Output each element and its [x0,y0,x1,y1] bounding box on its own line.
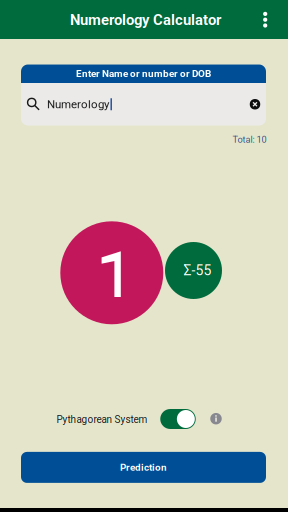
staticText: Total: 10 [232,134,266,145]
staticText: Numerology Calculator [70,11,221,29]
staticText: Enter Name or number or DOB [76,68,211,80]
staticText: Prediction [120,462,167,473]
button[interactable]: Pythagorean System [160,409,196,429]
staticText: Σ-55 [183,262,211,279]
staticText: Pythagorean System [56,414,147,425]
button[interactable]: More options [250,0,280,39]
button[interactable]: Prediction [21,452,266,483]
staticText: Numerology [47,97,109,111]
button[interactable]: Info [209,412,223,426]
